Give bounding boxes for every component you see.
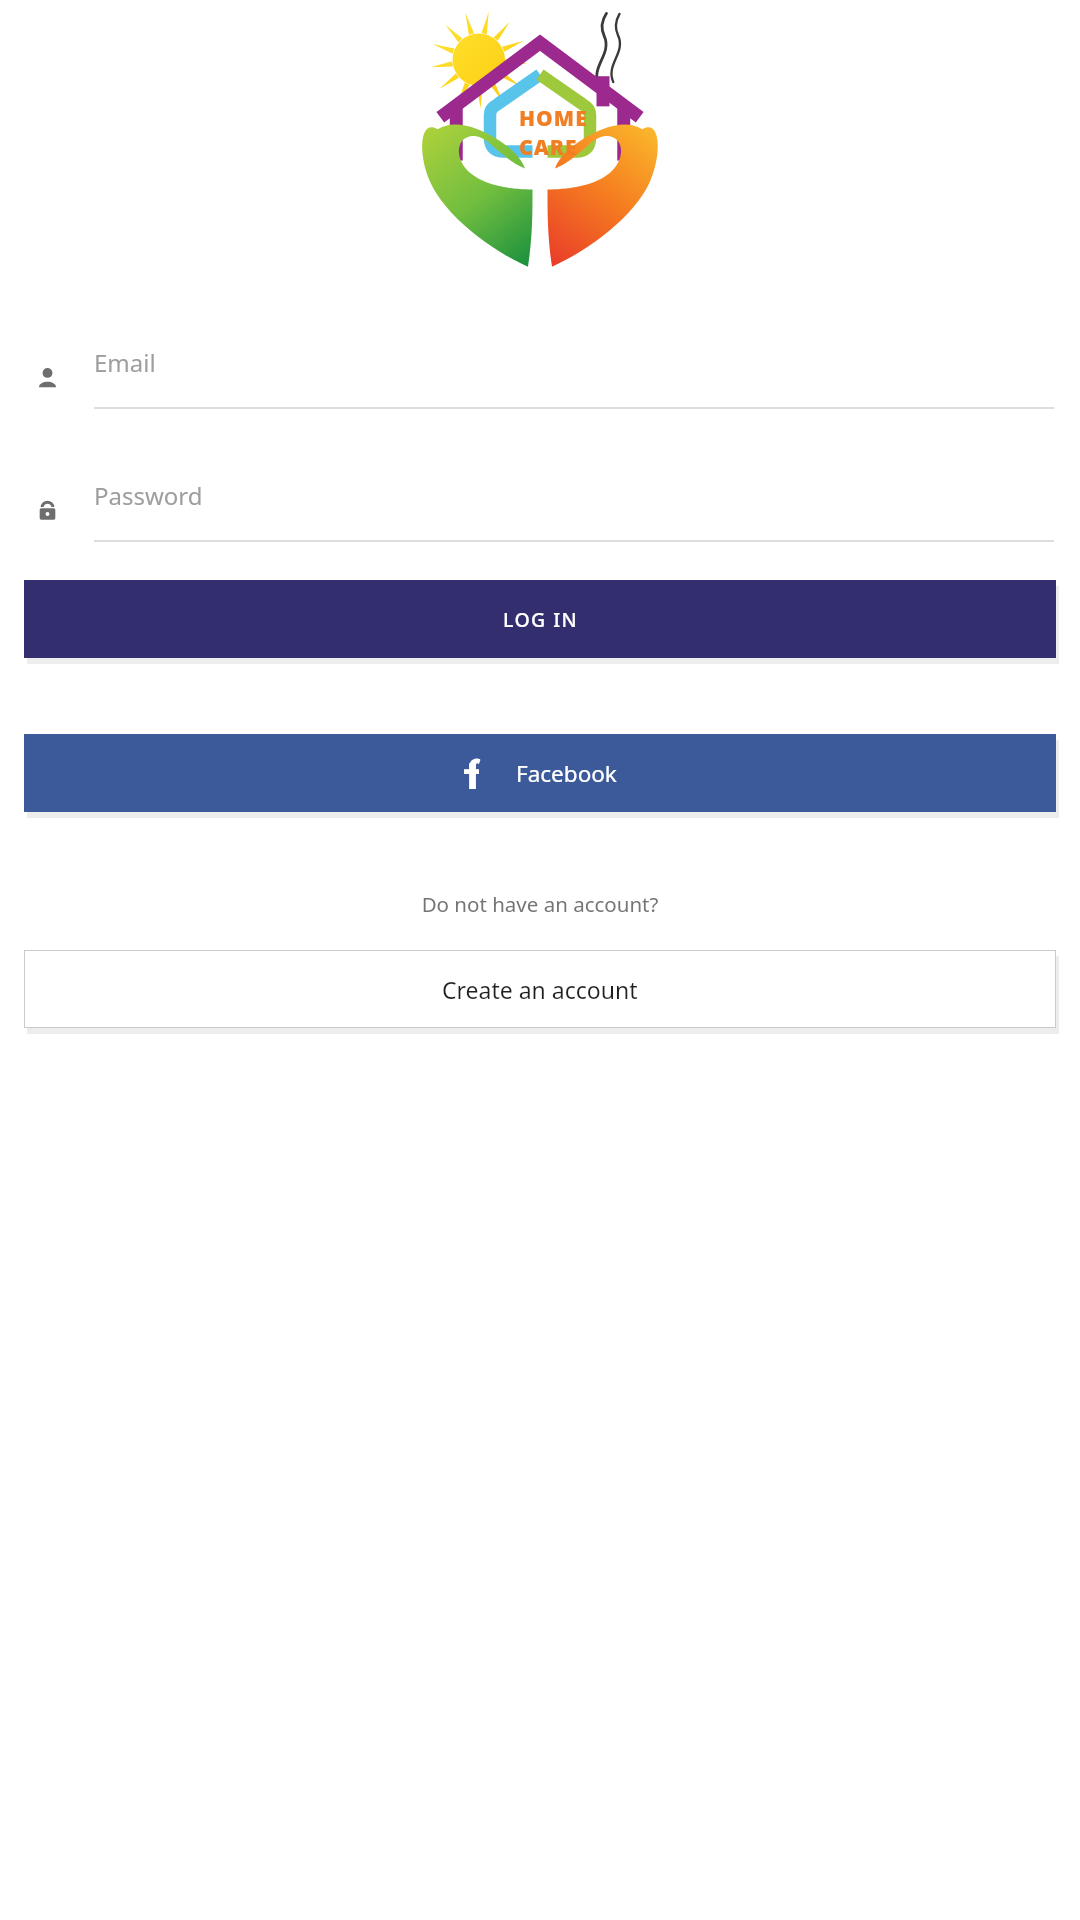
staticText: Email (94, 346, 156, 379)
button[interactable]: LOG IN (24, 580, 1056, 658)
staticText: HOME (519, 104, 588, 133)
staticText: Password (94, 479, 203, 512)
button[interactable]: Password (94, 479, 1054, 542)
staticText: Create an account (442, 974, 638, 1005)
staticText: CARE (519, 133, 578, 162)
staticText: LOG IN (503, 606, 578, 633)
staticText: Do not have an account? (0, 890, 1080, 918)
button[interactable]: Email (94, 346, 1054, 409)
button[interactable]: Create an account (24, 950, 1056, 1028)
button[interactable]: Sign in with Facebook (24, 734, 1056, 812)
staticText: Facebook (516, 758, 617, 789)
